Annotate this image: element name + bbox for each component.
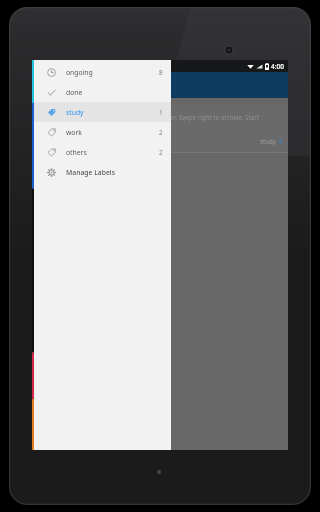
staticText: ongoing	[66, 68, 93, 77]
staticText: 4:00	[271, 62, 284, 71]
staticText: work	[66, 128, 82, 137]
other: Done	[47, 88, 56, 97]
staticText: 2	[159, 148, 163, 156]
other: Label	[47, 148, 56, 157]
staticText: study	[260, 137, 276, 145]
other: Ongoing	[47, 68, 56, 77]
other: Label	[47, 108, 56, 117]
other: Manage Labels	[47, 168, 56, 177]
other: Label	[47, 128, 56, 137]
staticText: Manage Labels	[66, 168, 115, 177]
button[interactable]: Hold an item and drag it up or down to r…	[32, 104, 288, 152]
staticText: 2	[159, 128, 163, 136]
staticText: 8	[159, 68, 163, 76]
button[interactable]: Label	[34, 102, 171, 122]
staticText: Hold an item and drag it up or down to r…	[40, 113, 282, 129]
staticText: study	[66, 108, 84, 117]
button[interactable]: Manage Labels	[34, 162, 171, 182]
button[interactable]: Label	[34, 122, 171, 142]
button[interactable]: Label	[34, 142, 171, 162]
button[interactable]: Ongoing	[34, 62, 171, 82]
staticText: others	[66, 148, 87, 157]
staticText: done	[66, 88, 83, 97]
button[interactable]: Done	[34, 82, 171, 102]
staticText: 1	[159, 108, 163, 116]
